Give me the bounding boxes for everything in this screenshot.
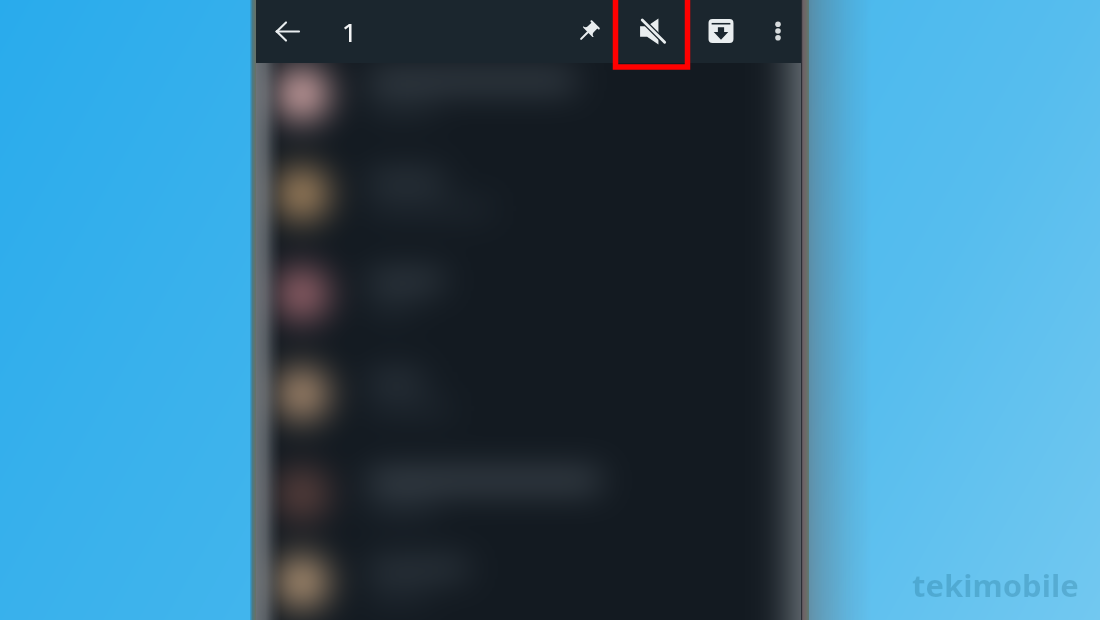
- button[interactable]: Pin chat: [563, 6, 613, 56]
- button[interactable]: [256, 544, 801, 620]
- button[interactable]: Archive chat: [696, 6, 746, 56]
- button[interactable]: [256, 344, 801, 444]
- button[interactable]: [256, 244, 801, 344]
- button[interactable]: [256, 444, 801, 544]
- button[interactable]: [256, 144, 801, 244]
- button[interactable]: More options: [756, 9, 800, 53]
- button[interactable]: Back: [262, 6, 312, 56]
- button[interactable]: 1: [342, 0, 357, 63]
- button[interactable]: [256, 44, 801, 144]
- button[interactable]: Mute notifications: [625, 4, 679, 58]
- staticText: 1: [342, 14, 357, 49]
- staticText: tekimobile: [912, 564, 1079, 606]
